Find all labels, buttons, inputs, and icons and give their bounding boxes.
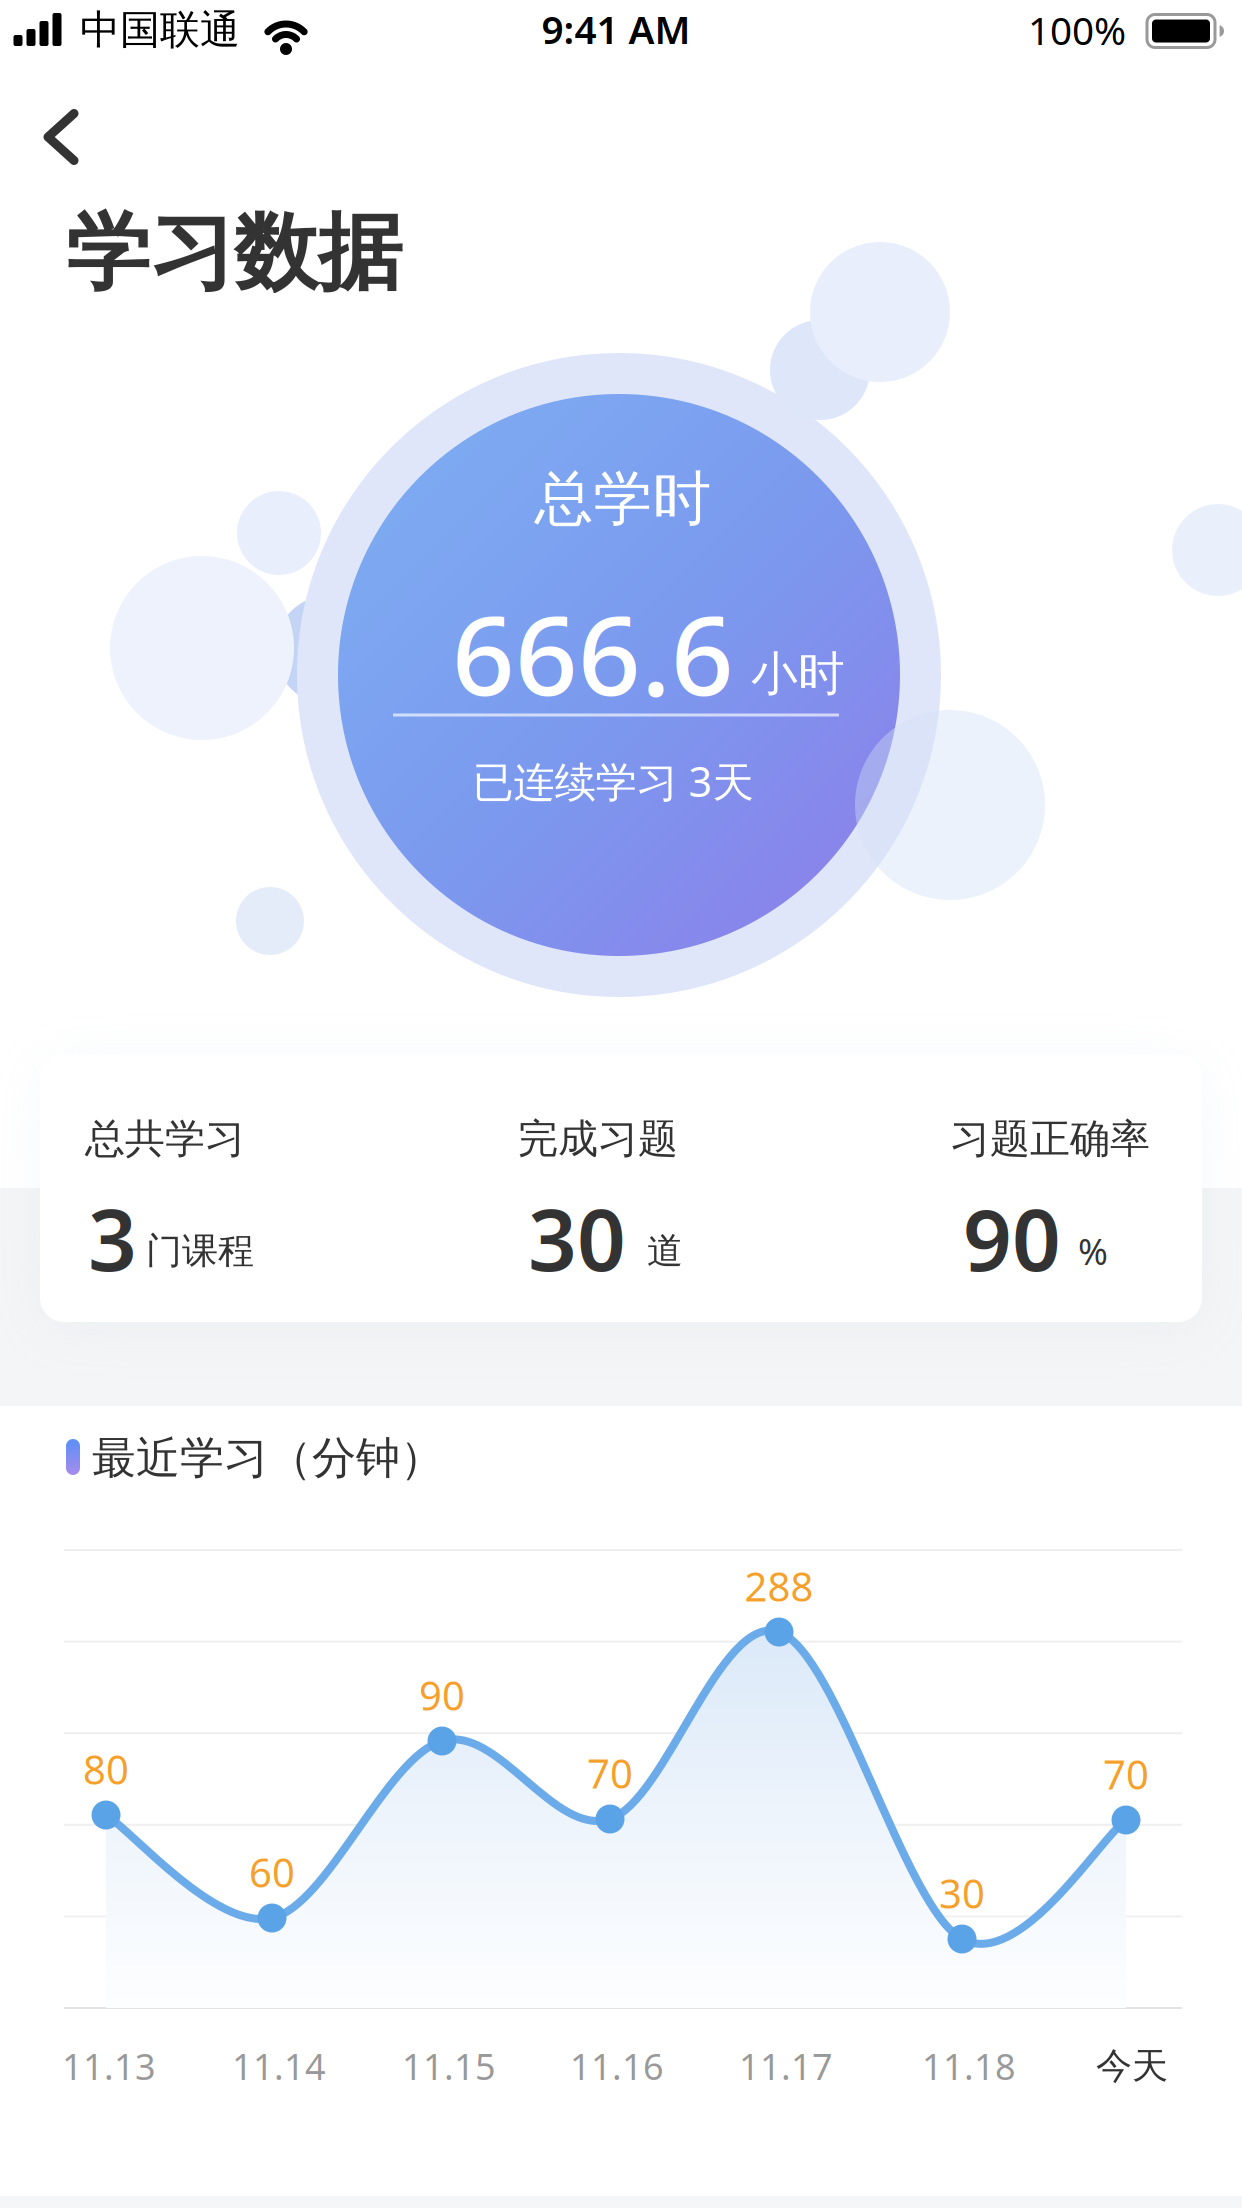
staticText: 90 bbox=[419, 1668, 465, 1721]
staticText: 11.13 bbox=[62, 2042, 156, 2090]
staticText: 70 bbox=[1103, 1747, 1149, 1800]
staticText: 今天 bbox=[1096, 2044, 1168, 2088]
staticText: 小时 bbox=[751, 645, 845, 703]
staticText: 100% bbox=[1028, 4, 1126, 56]
staticText: 70 bbox=[587, 1746, 633, 1799]
staticText: 中国联通 bbox=[80, 5, 240, 54]
staticText: 门课程 bbox=[146, 1229, 254, 1273]
staticText: 11.16 bbox=[570, 2042, 664, 2090]
staticText: 90 bbox=[963, 1181, 1061, 1295]
staticText: 9:41 AM bbox=[541, 3, 690, 55]
staticText: 80 bbox=[83, 1742, 129, 1795]
staticText: 道 bbox=[647, 1229, 683, 1273]
staticText: 完成习题 bbox=[518, 1114, 678, 1163]
staticText: 总学时 bbox=[534, 463, 711, 535]
staticText: 习题正确率 bbox=[950, 1114, 1150, 1163]
staticText: 288 bbox=[744, 1559, 813, 1612]
staticText: 学习数据 bbox=[66, 201, 402, 305]
staticText: 11.18 bbox=[922, 2042, 1016, 2090]
staticText: 30 bbox=[939, 1866, 985, 1919]
staticText: 11.17 bbox=[739, 2042, 833, 2090]
staticText: 总共学习 bbox=[85, 1114, 245, 1163]
staticText: 已连续学习 3天 bbox=[472, 754, 753, 808]
staticText: 60 bbox=[249, 1845, 295, 1898]
staticText: 30 bbox=[528, 1181, 626, 1295]
staticText: % bbox=[1078, 1227, 1108, 1275]
staticText: 11.15 bbox=[402, 2042, 496, 2090]
staticText: 最近学习（分钟） bbox=[92, 1431, 444, 1485]
staticText: 3 bbox=[88, 1181, 137, 1295]
button[interactable]: Back bbox=[30, 103, 92, 170]
staticText: 11.14 bbox=[232, 2042, 326, 2090]
staticText: 666.6 bbox=[452, 580, 734, 726]
